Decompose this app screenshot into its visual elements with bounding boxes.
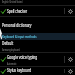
button[interactable]: Settings <box>65 6 75 16</box>
button[interactable]: Spell checker <box>0 6 64 16</box>
staticText: Spell checker <box>7 8 27 15</box>
staticText: Personal dictionary <box>2 22 32 29</box>
staticText: Stylus keyboard <box>7 67 31 74</box>
staticText: English (United States) <box>2 0 23 4</box>
staticText: Default <box>2 40 14 47</box>
button[interactable]: Settings <box>65 67 75 75</box>
button[interactable]: Default <box>0 40 75 52</box>
button[interactable]: Settings <box>65 53 75 66</box>
button[interactable]: Google voice typing <box>0 53 64 66</box>
button[interactable]: Stylus keyboard <box>0 67 64 75</box>
button[interactable]: English (United States) <box>0 0 75 5</box>
staticText: Automatic <box>7 62 16 66</box>
button[interactable]: Personal dictionary <box>0 17 75 33</box>
staticText: Keyboard & input methods <box>2 34 37 39</box>
staticText: Google voice typing <box>7 54 38 61</box>
staticText: Samsung keyboard <box>2 48 20 52</box>
